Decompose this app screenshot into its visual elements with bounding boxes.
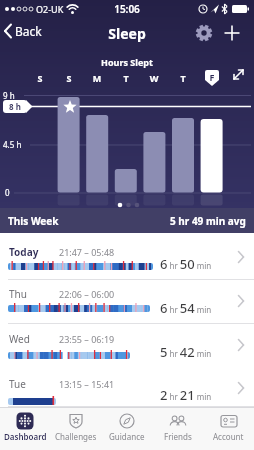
button[interactable] (224, 25, 240, 41)
staticText: 23:55 – 06:19 (59, 333, 115, 345)
staticText: T (118, 72, 134, 84)
staticText: 22:06 – 06:00 (59, 288, 115, 300)
staticText: 2 hr 21 min (160, 386, 212, 404)
staticText: M (89, 72, 105, 84)
button[interactable]: Friends (152, 407, 203, 450)
staticText: 6 hr 54 min (160, 299, 212, 317)
button[interactable] (231, 67, 246, 82)
staticText: Thu (9, 287, 27, 301)
button[interactable]: Dashboard (0, 407, 50, 450)
staticText: 15:06 (0, 2, 254, 16)
staticText: Account (213, 431, 244, 442)
staticText: This Week (8, 214, 59, 228)
button[interactable]: Thu (0, 280, 254, 324)
button[interactable]: Account (203, 407, 254, 450)
button[interactable] (195, 24, 213, 42)
staticText: 9 h (3, 90, 15, 101)
button[interactable]: Challenges (50, 407, 101, 450)
staticText: Guidance (109, 431, 145, 442)
staticText: Back (15, 23, 42, 39)
staticText: 13:15 – 15:41 (59, 378, 115, 390)
staticText: T (175, 72, 191, 84)
staticText: Tue (9, 377, 26, 391)
staticText: Challenges (55, 431, 97, 442)
button[interactable]: Guidance (101, 407, 152, 450)
staticText: Wed (9, 332, 30, 346)
staticText: Friends (164, 431, 192, 442)
staticText: 21:47 – 05:48 (59, 246, 115, 258)
staticText: 6 hr 50 min (160, 255, 212, 273)
staticText: Today (9, 245, 39, 259)
button[interactable]: Tue (0, 367, 254, 407)
staticText: Dashboard (4, 431, 47, 442)
staticText: 8 h (9, 101, 21, 112)
button[interactable]: Today (0, 233, 254, 280)
staticText: W (146, 72, 162, 84)
staticText: 5 hr 49 min avg (170, 214, 246, 228)
staticText: S (32, 72, 48, 84)
button[interactable]: Wed (0, 324, 254, 368)
staticText: F (204, 71, 220, 83)
staticText: O2-UK (36, 3, 64, 15)
staticText: 5 hr 42 min (160, 343, 212, 361)
staticText: 0 (5, 187, 10, 198)
staticText: Hours Slept (0, 56, 254, 68)
staticText: Sleep (0, 24, 254, 43)
staticText: 4.5 h (3, 139, 22, 150)
staticText: S (61, 72, 77, 84)
button[interactable]: Back (3, 22, 42, 40)
